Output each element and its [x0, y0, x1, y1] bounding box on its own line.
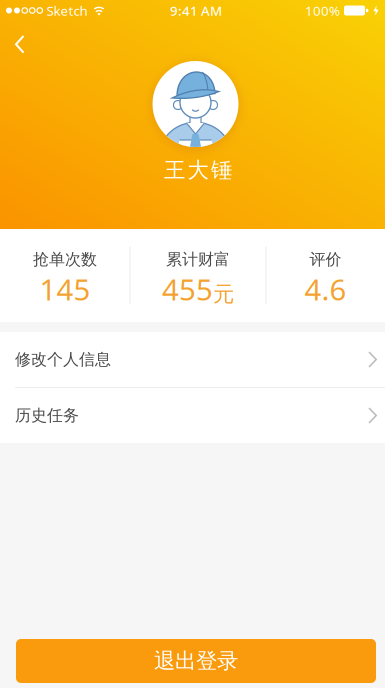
staticText: 4.6 — [304, 269, 346, 308]
staticText: 145 — [39, 269, 90, 308]
staticText: 抢单次数 — [33, 250, 97, 269]
staticText: 9:41 AM — [170, 2, 222, 19]
button[interactable]: 退出登录 — [16, 639, 376, 683]
staticText: 退出登录 — [154, 648, 238, 674]
staticText: 王大锤 — [164, 157, 232, 183]
staticText: 历史任务 — [15, 406, 79, 425]
button[interactable]: 修改个人信息 — [0, 332, 385, 387]
staticText: 修改个人信息 — [15, 350, 111, 369]
staticText: Sketch — [46, 2, 87, 19]
button[interactable]: Back — [0, 21, 35, 57]
staticText: 455元 — [162, 269, 234, 308]
button[interactable]: 历史任务 — [0, 388, 385, 443]
staticText: 100% — [305, 2, 340, 19]
staticText: 评价 — [309, 250, 341, 269]
staticText: 累计财富 — [166, 250, 230, 269]
